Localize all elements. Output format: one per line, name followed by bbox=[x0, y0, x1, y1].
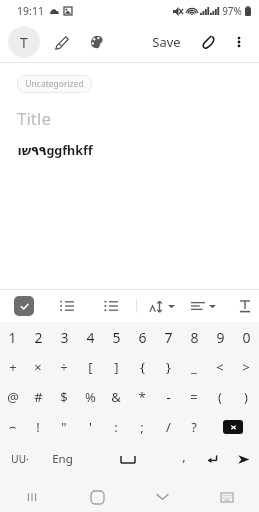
staticText: 7 bbox=[164, 328, 173, 347]
staticText: $ bbox=[60, 388, 68, 406]
staticText: ) bbox=[244, 388, 248, 406]
button[interactable]: Recents bbox=[15, 482, 49, 512]
staticText: > bbox=[242, 358, 250, 376]
staticText: ! bbox=[36, 418, 40, 436]
staticText: ⌢ bbox=[8, 421, 17, 434]
button[interactable]: Bulleted list bbox=[100, 295, 122, 317]
button[interactable]: 7 bbox=[155, 322, 181, 352]
button[interactable]: Uncategorized bbox=[17, 75, 92, 93]
button[interactable]: × bbox=[25, 352, 51, 382]
staticText: " bbox=[61, 418, 67, 436]
button[interactable]: $ bbox=[51, 382, 77, 412]
button[interactable]: { bbox=[129, 352, 155, 382]
button[interactable]: Send bbox=[227, 442, 259, 476]
button[interactable]: _ bbox=[181, 352, 207, 382]
staticText: Uncategorized bbox=[25, 78, 84, 90]
button[interactable]: / bbox=[155, 412, 181, 442]
button[interactable]: ; bbox=[129, 412, 155, 442]
staticText: , bbox=[182, 447, 186, 465]
button[interactable]: ÷ bbox=[51, 352, 77, 382]
staticText: 6 bbox=[138, 328, 147, 347]
staticText: = bbox=[190, 388, 198, 406]
staticText: & bbox=[111, 388, 121, 406]
staticText: 0 bbox=[242, 328, 251, 347]
staticText: 5 bbox=[112, 328, 121, 347]
staticText: ÷ bbox=[60, 358, 68, 376]
button[interactable]: 0 bbox=[233, 322, 259, 352]
button[interactable]: Keyboard bbox=[210, 482, 244, 512]
button[interactable]: 4 bbox=[77, 322, 103, 352]
button[interactable]: ) bbox=[233, 382, 259, 412]
button[interactable]: + bbox=[0, 352, 25, 382]
staticText: < bbox=[216, 358, 224, 376]
button[interactable]: ' bbox=[77, 412, 103, 442]
staticText: 9 bbox=[216, 328, 225, 347]
button[interactable]: Text format bbox=[234, 295, 256, 317]
button[interactable]: : bbox=[103, 412, 129, 442]
button[interactable]: Language bbox=[40, 442, 85, 476]
staticText: ( bbox=[218, 388, 222, 406]
button[interactable]: Numbered list bbox=[56, 295, 78, 317]
staticText: UU· bbox=[11, 452, 29, 466]
button[interactable]: % bbox=[77, 382, 103, 412]
button[interactable]: > bbox=[233, 352, 259, 382]
button[interactable]: Text size bbox=[149, 299, 175, 314]
button[interactable]: Title bbox=[17, 107, 51, 130]
staticText: ] bbox=[114, 358, 119, 376]
button[interactable]: - bbox=[155, 382, 181, 412]
staticText: 19:11 bbox=[17, 4, 44, 18]
button[interactable]: Back bbox=[145, 482, 179, 512]
button[interactable]: ! bbox=[25, 412, 51, 442]
button[interactable]: } bbox=[155, 352, 181, 382]
button[interactable]: 6 bbox=[129, 322, 155, 352]
button[interactable]: [ bbox=[77, 352, 103, 382]
staticText: : bbox=[114, 418, 118, 436]
button[interactable]: ( bbox=[207, 382, 233, 412]
staticText: { bbox=[140, 358, 145, 376]
button[interactable]: 8 bbox=[181, 322, 207, 352]
button[interactable]: Checklist bbox=[14, 296, 34, 316]
staticText: [ bbox=[88, 358, 93, 376]
button[interactable]: Palette bbox=[82, 27, 112, 57]
button[interactable]: = bbox=[181, 382, 207, 412]
button[interactable]: * bbox=[129, 382, 155, 412]
staticText: ٩٩שוggfhkff bbox=[17, 142, 93, 159]
staticText: 97% bbox=[222, 4, 242, 18]
button[interactable]: 1 bbox=[0, 322, 25, 352]
button[interactable]: 9 bbox=[207, 322, 233, 352]
button[interactable]: Text mode bbox=[8, 26, 40, 58]
button[interactable]: & bbox=[103, 382, 129, 412]
button[interactable]: # bbox=[25, 382, 51, 412]
button[interactable]: Enter bbox=[197, 442, 227, 476]
staticText: # bbox=[34, 388, 43, 406]
staticText: Title bbox=[17, 107, 51, 130]
button[interactable]: Home bbox=[80, 482, 114, 512]
button[interactable]: Backspace bbox=[207, 412, 259, 442]
staticText: + bbox=[9, 358, 17, 376]
button[interactable]: More options bbox=[225, 28, 253, 56]
staticText: 3 bbox=[60, 328, 69, 347]
button[interactable]: ? bbox=[181, 412, 207, 442]
button[interactable]: Save bbox=[146, 29, 187, 55]
button[interactable]: , bbox=[170, 442, 197, 476]
button[interactable]: Handwriting bbox=[46, 27, 76, 57]
button[interactable]: 2 bbox=[25, 322, 51, 352]
button[interactable]: < bbox=[207, 352, 233, 382]
button[interactable]: Symbols bbox=[0, 442, 40, 476]
button[interactable]: Space bbox=[85, 442, 170, 476]
staticText: ' bbox=[89, 418, 92, 436]
staticText: % bbox=[85, 388, 96, 406]
staticText: * bbox=[138, 388, 146, 406]
button[interactable]: ] bbox=[103, 352, 129, 382]
staticText: 2 bbox=[34, 328, 43, 347]
button[interactable]: Alignment bbox=[191, 299, 216, 313]
button[interactable]: " bbox=[51, 412, 77, 442]
button[interactable]: ⌢ bbox=[0, 412, 25, 442]
button[interactable]: 3 bbox=[51, 322, 77, 352]
button[interactable]: ٩٩שוggfhkff bbox=[17, 142, 259, 159]
button[interactable]: @ bbox=[0, 382, 25, 412]
button[interactable]: Attach bbox=[195, 28, 223, 56]
staticText: Save bbox=[152, 33, 181, 51]
staticText: Eng bbox=[52, 451, 73, 467]
button[interactable]: 5 bbox=[103, 322, 129, 352]
